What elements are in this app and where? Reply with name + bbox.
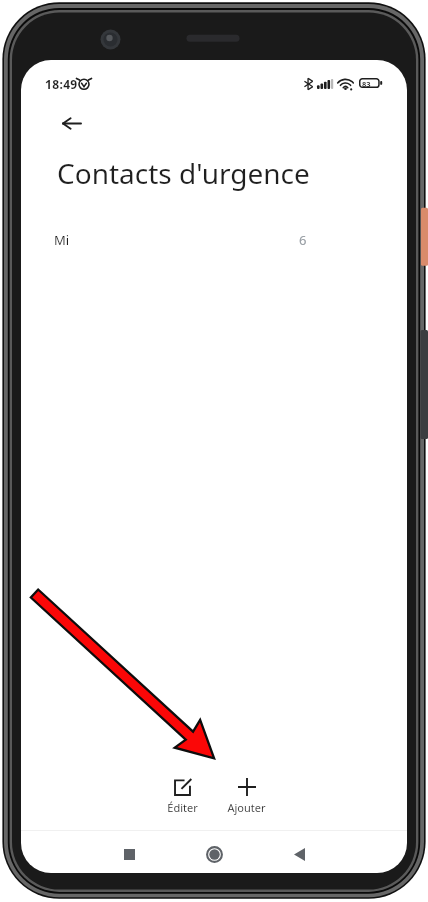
staticText: 83 [362, 79, 371, 89]
button[interactable]: Home [194, 834, 234, 873]
button[interactable]: Ajouter [214, 775, 278, 819]
button[interactable]: Back [48, 100, 94, 146]
staticText: 18:49 [45, 76, 78, 92]
staticText: Éditer [167, 800, 198, 815]
staticText: 6 [299, 231, 307, 249]
button[interactable]: Éditer [150, 775, 214, 819]
button[interactable]: Back [279, 834, 319, 873]
staticText: Ajouter [227, 800, 266, 815]
staticText: Contacts d'urgence [57, 154, 310, 192]
button[interactable]: Mi [21, 222, 407, 258]
staticText: Mi [54, 231, 70, 249]
button[interactable]: Recent apps [109, 834, 149, 873]
